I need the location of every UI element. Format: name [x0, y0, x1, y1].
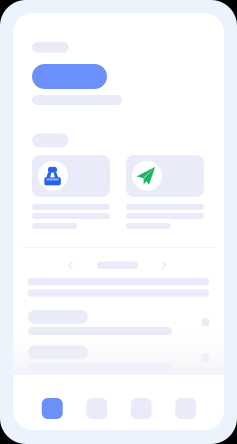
button[interactable]: Tab 3: [131, 398, 152, 419]
button[interactable]: Next: [156, 259, 171, 272]
button[interactable]: Tab 2: [86, 398, 107, 419]
button[interactable]: Previous: [63, 259, 78, 272]
button[interactable]: Tab 1: [42, 398, 63, 419]
button[interactable]: Tab 4: [175, 398, 196, 419]
